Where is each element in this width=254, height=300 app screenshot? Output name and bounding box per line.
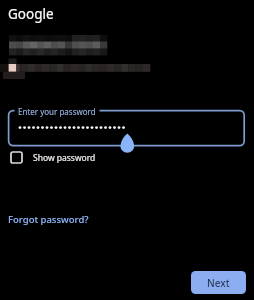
staticText: Next [207,276,230,290]
staticText: Show password [33,152,96,164]
staticText: Forgot password? [8,213,89,226]
button[interactable]: Next [191,271,246,294]
button[interactable]: Show password [8,149,112,166]
staticText: Enter your password [18,106,96,117]
staticText: Google [8,5,54,23]
button[interactable]: Forgot password? [5,211,86,224]
